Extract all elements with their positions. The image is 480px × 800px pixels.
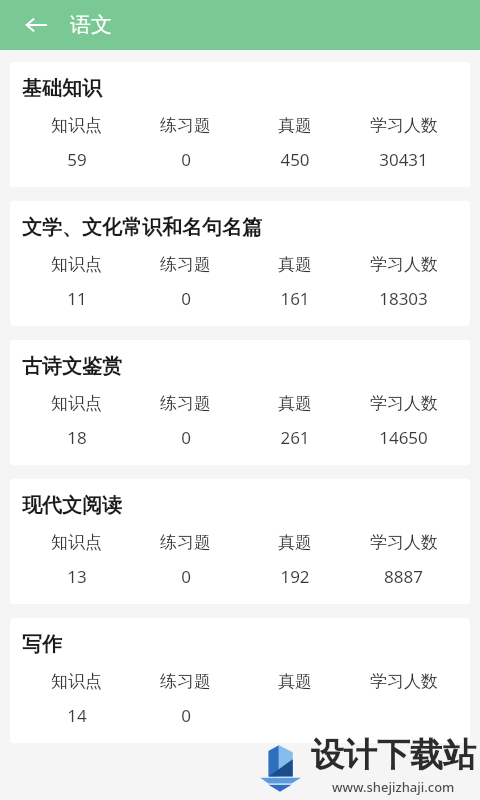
staticText: 59 xyxy=(67,148,87,171)
staticText: 11 xyxy=(67,287,87,310)
staticText: 真题 xyxy=(278,393,312,414)
staticText: 练习题 xyxy=(160,532,211,553)
staticText: 0 xyxy=(181,287,191,310)
staticText: 练习题 xyxy=(160,671,211,692)
staticText: 练习题 xyxy=(160,393,211,414)
staticText: 18303 xyxy=(379,287,428,310)
staticText: 真题 xyxy=(278,532,312,553)
staticText: 0 xyxy=(181,148,191,171)
button[interactable]: 写作 xyxy=(10,618,470,743)
staticText: 0 xyxy=(181,704,191,727)
staticText: 14 xyxy=(67,704,87,727)
staticText: 设计下载站 xyxy=(311,734,476,776)
staticText: 18 xyxy=(67,426,87,449)
staticText: 练习题 xyxy=(160,254,211,275)
staticText: 知识点 xyxy=(51,393,102,414)
staticText: 0 xyxy=(181,565,191,588)
button[interactable]: 古诗文鉴赏 xyxy=(10,340,470,465)
staticText: 知识点 xyxy=(51,115,102,136)
staticText: 192 xyxy=(280,565,310,588)
staticText: 学习人数 xyxy=(370,393,438,414)
staticText: 161 xyxy=(280,287,310,310)
staticText: 14650 xyxy=(379,426,428,449)
staticText: 261 xyxy=(280,426,310,449)
staticText: 450 xyxy=(280,148,310,171)
button[interactable]: 文学、文化常识和名句名篇 xyxy=(10,201,470,326)
staticText: 知识点 xyxy=(51,254,102,275)
button[interactable]: 现代文阅读 xyxy=(10,479,470,604)
staticText: 现代文阅读 xyxy=(22,493,122,518)
staticText: 知识点 xyxy=(51,532,102,553)
staticText: 学习人数 xyxy=(370,115,438,136)
staticText: 语文 xyxy=(70,12,112,38)
button[interactable]: Back xyxy=(16,5,56,45)
staticText: 8887 xyxy=(384,565,423,588)
staticText: 真题 xyxy=(278,671,312,692)
staticText: 学习人数 xyxy=(370,254,438,275)
staticText: 0 xyxy=(181,426,191,449)
staticText: 基础知识 xyxy=(22,76,102,101)
staticText: www.shejizhaji.com xyxy=(332,778,455,796)
staticText: 写作 xyxy=(22,632,62,657)
staticText: 学习人数 xyxy=(370,671,438,692)
staticText: 13 xyxy=(67,565,87,588)
staticText: 知识点 xyxy=(51,671,102,692)
staticText: 30431 xyxy=(379,148,428,171)
staticText: 真题 xyxy=(278,115,312,136)
staticText: 学习人数 xyxy=(370,532,438,553)
staticText: 练习题 xyxy=(160,115,211,136)
staticText: 真题 xyxy=(278,254,312,275)
staticText: 文学、文化常识和名句名篇 xyxy=(22,215,262,240)
button[interactable]: 基础知识 xyxy=(10,62,470,187)
staticText: 古诗文鉴赏 xyxy=(22,354,122,379)
